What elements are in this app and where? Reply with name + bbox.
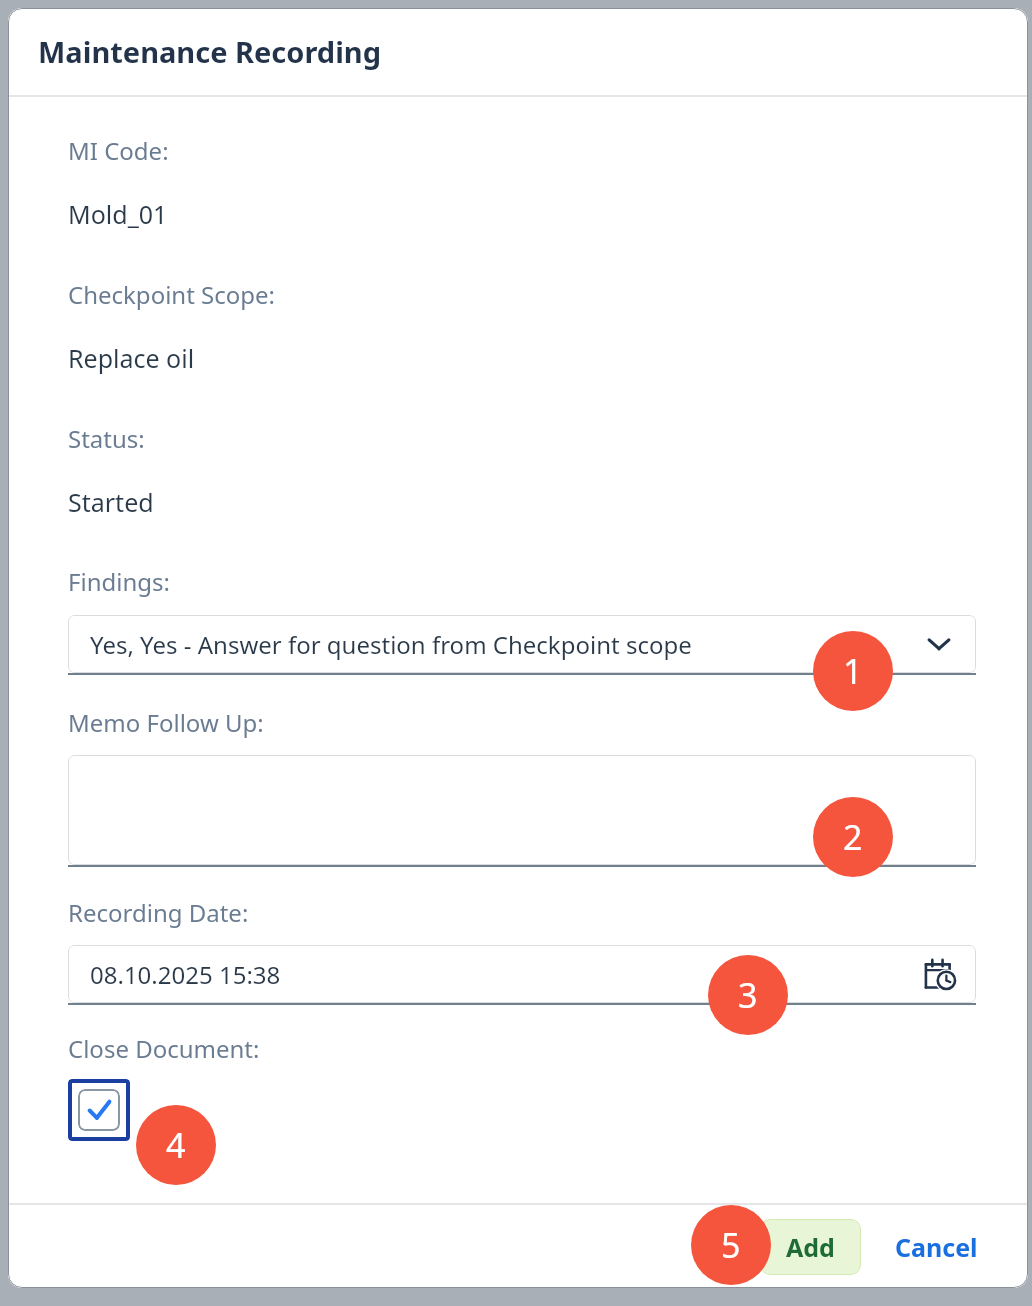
staticText: 5 <box>721 1222 741 1268</box>
staticText: Replace oil <box>68 341 195 375</box>
staticText: 4 <box>166 1122 186 1168</box>
staticText: Maintenance Recording <box>38 32 382 71</box>
button[interactable]: Close Document checkbox <box>68 1079 130 1141</box>
staticText: 08.10.2025 15:38 <box>90 958 281 991</box>
staticText: Recording Date: <box>68 896 249 929</box>
button[interactable]: Add <box>760 1219 861 1275</box>
staticText: 1 <box>843 648 863 694</box>
button[interactable]: Yes, Yes - Answer for question from Chec… <box>68 615 976 673</box>
staticText: 3 <box>738 972 758 1018</box>
other: Pick date and time <box>924 958 956 990</box>
staticText: Checkpoint Scope: <box>68 278 276 311</box>
staticText: Mold_01 <box>68 197 168 231</box>
staticText: Status: <box>68 422 145 455</box>
button[interactable]: 08.10.2025 15:38 <box>68 945 976 1003</box>
other: Open findings dropdown <box>926 631 952 657</box>
staticText: Close Document: <box>68 1032 260 1065</box>
staticText: Started <box>68 485 154 519</box>
staticText: Add <box>786 1230 835 1264</box>
staticText: Findings: <box>68 565 170 598</box>
staticText: Cancel <box>895 1230 978 1264</box>
staticText: Memo Follow Up: <box>68 706 264 739</box>
staticText: MI Code: <box>68 134 169 167</box>
staticText: Yes, Yes - Answer for question from Chec… <box>90 628 692 661</box>
button[interactable]: Cancel <box>873 1219 1000 1275</box>
button[interactable] <box>68 755 976 865</box>
staticText: 2 <box>843 814 863 860</box>
